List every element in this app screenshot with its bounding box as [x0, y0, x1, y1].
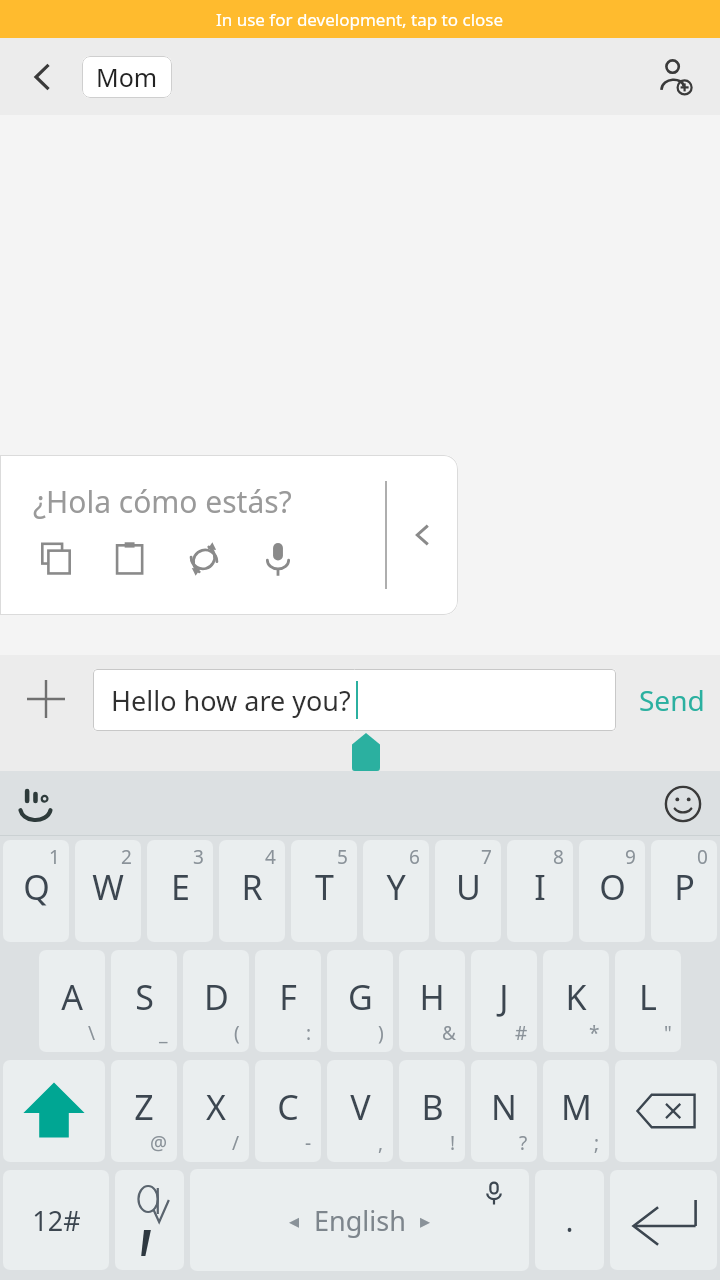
button[interactable]: Add contact [644, 46, 706, 108]
button[interactable]: Y [363, 840, 429, 942]
staticText: F [279, 974, 297, 1020]
staticText: \ [88, 1020, 96, 1046]
button[interactable]: P [651, 840, 717, 942]
staticText: Send [639, 681, 705, 719]
staticText: Z [134, 1084, 154, 1130]
button[interactable]: R [219, 840, 285, 942]
staticText: , [378, 1130, 384, 1156]
staticText: A [61, 974, 83, 1020]
staticText: ! [450, 1130, 456, 1156]
button[interactable]: Z [111, 1060, 177, 1162]
button[interactable]: O [579, 840, 645, 942]
button[interactable]: F [255, 950, 321, 1052]
button[interactable]: T [291, 840, 357, 942]
button[interactable]: M [543, 1060, 609, 1162]
button[interactable]: H [399, 950, 465, 1052]
staticText: 4 [265, 844, 276, 870]
staticText: I [534, 864, 546, 910]
button[interactable]: K [543, 950, 609, 1052]
staticText: V [350, 1084, 371, 1130]
button[interactable]: Hello how are you? [93, 669, 616, 731]
staticText: 3 [193, 844, 204, 870]
staticText: W [92, 864, 124, 910]
staticText: L [639, 974, 657, 1020]
button[interactable]: Keyboard menu [8, 775, 66, 833]
staticText: / [232, 1130, 240, 1156]
staticText: Hello how are you? [111, 682, 351, 719]
staticText: " [664, 1020, 672, 1046]
button[interactable]: W [75, 840, 141, 942]
button[interactable]: B [399, 1060, 465, 1162]
staticText: G [348, 974, 373, 1020]
button[interactable]: Attach [10, 663, 82, 735]
button[interactable]: Mom [82, 56, 172, 98]
button[interactable]: Collapse [392, 505, 452, 565]
staticText: _ [159, 1020, 168, 1046]
staticText: ; [594, 1130, 600, 1156]
staticText: - [305, 1130, 312, 1156]
staticText: D [204, 974, 229, 1020]
button[interactable]: V [327, 1060, 393, 1162]
button[interactable]: Paste [107, 536, 153, 582]
staticText: K [565, 974, 587, 1020]
staticText: M [561, 1084, 592, 1130]
button[interactable]: Shift [3, 1060, 105, 1162]
staticText: B [421, 1084, 444, 1130]
staticText: ( [234, 1020, 240, 1046]
button[interactable]: Send [624, 669, 720, 731]
staticText: * [589, 1020, 600, 1046]
staticText: 2 [121, 844, 132, 870]
button[interactable]: S [111, 950, 177, 1052]
button[interactable]: D [183, 950, 249, 1052]
staticText: N [491, 1084, 517, 1130]
staticText: ¿Hola cómo estás? [33, 481, 292, 522]
staticText: C [277, 1084, 299, 1130]
staticText: X [206, 1084, 226, 1130]
button[interactable]: N [471, 1060, 537, 1162]
button[interactable]: Q [3, 840, 69, 942]
staticText: U [456, 864, 481, 910]
button[interactable]: G [327, 950, 393, 1052]
button[interactable]: I [507, 840, 573, 942]
staticText: Q [23, 864, 50, 910]
button[interactable]: Back [14, 49, 70, 105]
button[interactable]: X [183, 1060, 249, 1162]
button[interactable]: E [147, 840, 213, 942]
button[interactable]: 12# [3, 1170, 109, 1270]
staticText: 12# [32, 1202, 81, 1239]
staticText: 6 [409, 844, 420, 870]
staticText: ? [519, 1130, 528, 1156]
staticText: @ [150, 1130, 168, 1156]
staticText: : [306, 1020, 312, 1046]
staticText: 0 [697, 844, 708, 870]
staticText: # [515, 1020, 528, 1046]
staticText: English [314, 1202, 406, 1239]
staticText: 1 [49, 844, 60, 870]
button[interactable]: Language [115, 1170, 184, 1270]
button[interactable]: J [471, 950, 537, 1052]
button[interactable]: A [39, 950, 105, 1052]
button[interactable]: . [535, 1170, 604, 1270]
button[interactable]: Speak [255, 536, 301, 582]
staticText: P [674, 864, 695, 910]
staticText: In use for development, tap to close [216, 8, 504, 31]
button[interactable]: C [255, 1060, 321, 1162]
button[interactable]: Retranslate [181, 536, 227, 582]
staticText: 9 [625, 844, 636, 870]
staticText: T [315, 864, 334, 910]
button[interactable]: L [615, 950, 681, 1052]
staticText: ▸ [420, 1209, 431, 1232]
staticText: Y [386, 864, 406, 910]
staticText: E [171, 864, 190, 910]
button[interactable]: Emoji [654, 775, 712, 833]
button[interactable]: ◂ [190, 1169, 529, 1271]
staticText: 5 [337, 844, 348, 870]
button[interactable]: Backspace [615, 1060, 717, 1162]
button[interactable]: Copy [33, 536, 79, 582]
staticText: H [419, 974, 445, 1020]
button[interactable]: Enter [610, 1170, 717, 1270]
staticText: ) [378, 1020, 384, 1046]
button[interactable]: U [435, 840, 501, 942]
button[interactable]: In use for development, tap to close [0, 0, 720, 38]
staticText: 8 [553, 844, 564, 870]
